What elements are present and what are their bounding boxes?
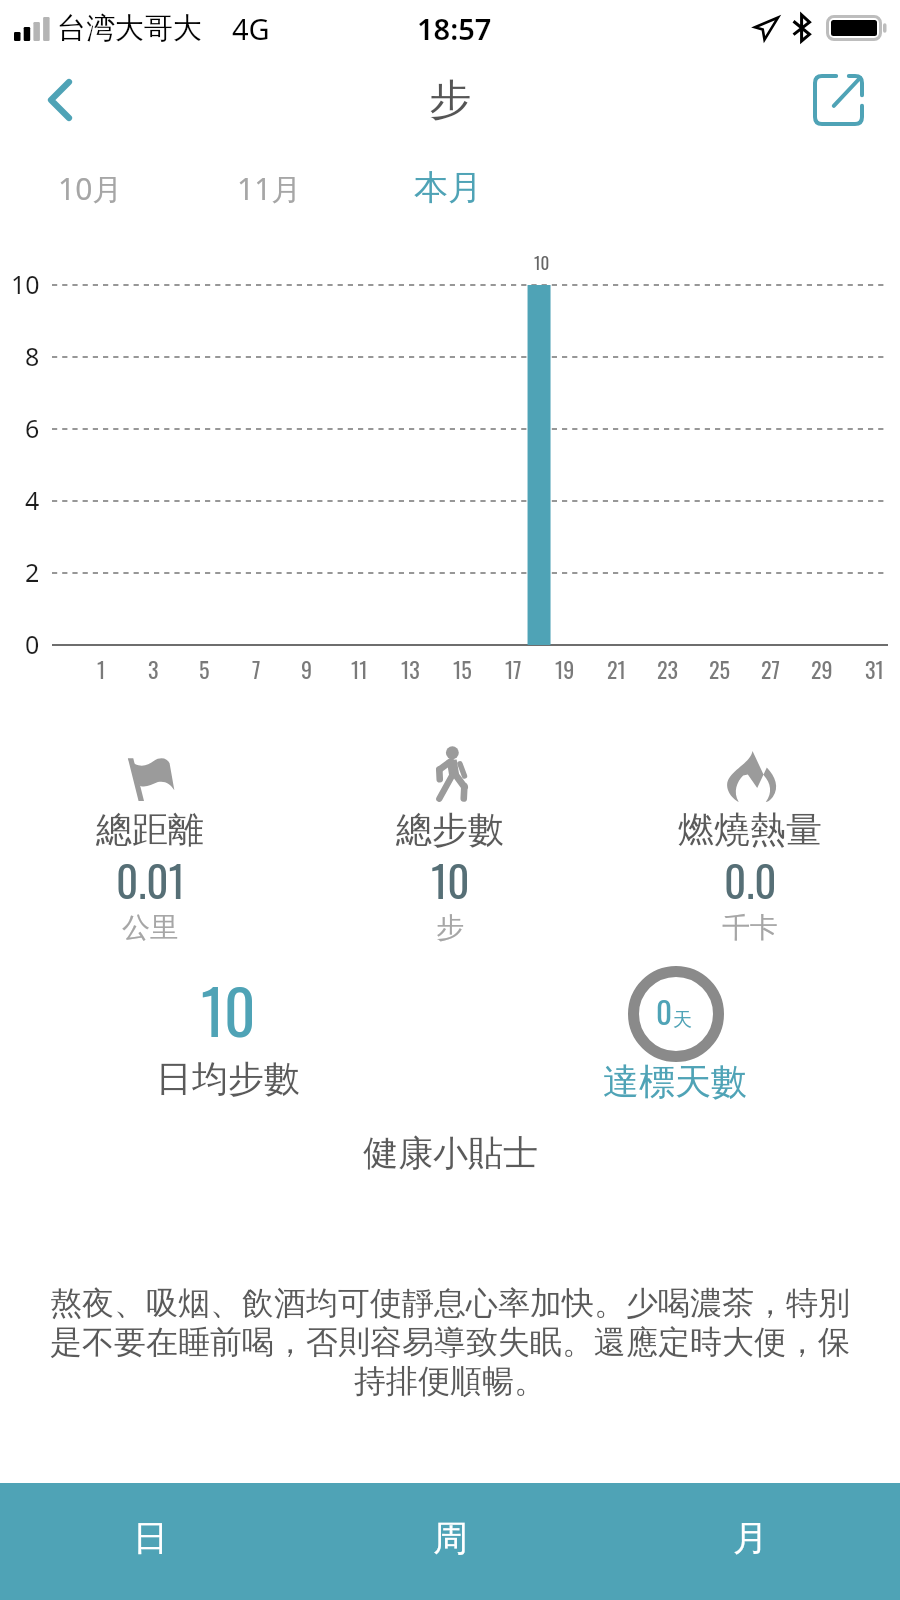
staticText: 0.01 <box>116 848 185 908</box>
button[interactable]: Back <box>22 62 98 138</box>
staticText: 步 <box>436 910 464 945</box>
staticText: 台湾大哥大 <box>57 10 202 47</box>
button[interactable]: 月 <box>600 1483 900 1600</box>
staticText: 1 <box>97 653 106 683</box>
button[interactable]: 燃燒熱量 <box>600 740 900 960</box>
staticText: 6 <box>25 411 40 445</box>
staticText: 步 <box>429 74 471 127</box>
staticText: 月 <box>733 1516 768 1560</box>
button[interactable]: 0 <box>575 960 775 1112</box>
staticText: 17 <box>505 653 522 683</box>
staticText: 公里 <box>122 910 178 945</box>
staticText: 10 <box>534 250 550 275</box>
staticText: 總步數 <box>396 807 504 852</box>
button[interactable]: 日 <box>0 1483 300 1600</box>
staticText: 31 <box>865 653 884 683</box>
button[interactable]: 10月 <box>10 160 170 216</box>
button[interactable]: 本月 <box>368 158 528 216</box>
staticText: 11月 <box>237 168 302 209</box>
staticText: 天 <box>673 1008 692 1032</box>
staticText: 日均步數 <box>156 1056 300 1101</box>
staticText: 熬夜、吸烟、飲酒均可使靜息心率加快。少喝濃茶，特別是不要在睡前喝，否則容易導致失… <box>44 1283 856 1402</box>
staticText: 3 <box>148 653 159 683</box>
staticText: 2 <box>25 555 40 589</box>
staticText: 10 <box>431 848 470 908</box>
staticText: 18:57 <box>417 9 492 48</box>
staticText: 27 <box>761 653 781 683</box>
staticText: 日 <box>133 1516 168 1560</box>
staticText: 健康小貼士 <box>363 1131 538 1175</box>
staticText: 達標天數 <box>603 1059 747 1104</box>
button[interactable]: 周 <box>300 1483 600 1600</box>
staticText: 10 <box>11 267 40 301</box>
staticText: 本月 <box>414 166 482 209</box>
button[interactable]: 總步數 <box>300 740 600 960</box>
staticText: 0.0 <box>724 848 777 908</box>
staticText: 0 <box>656 988 673 1034</box>
staticText: 0 <box>25 627 40 661</box>
staticText: 8 <box>25 339 40 373</box>
staticText: 10 <box>201 964 256 1054</box>
staticText: 燃燒熱量 <box>678 807 822 852</box>
button[interactable]: Share <box>798 60 880 140</box>
staticText: 21 <box>607 653 626 683</box>
staticText: 9 <box>301 653 313 683</box>
staticText: 23 <box>657 653 679 683</box>
staticText: 7 <box>252 653 261 683</box>
staticText: 29 <box>811 653 833 683</box>
staticText: 10月 <box>58 168 123 209</box>
staticText: 周 <box>433 1516 468 1560</box>
staticText: 總距離 <box>96 807 204 852</box>
staticText: 5 <box>199 653 210 683</box>
staticText: 4 <box>25 483 40 517</box>
staticText: 千卡 <box>722 910 778 945</box>
button[interactable]: 10 <box>128 950 328 1115</box>
button[interactable]: 11月 <box>189 160 349 216</box>
staticText: 19 <box>555 653 575 683</box>
staticText: 4G <box>232 9 270 48</box>
staticText: 25 <box>709 653 730 683</box>
staticText: 11 <box>351 653 368 683</box>
staticText: 15 <box>453 653 472 683</box>
button[interactable]: 總距離 <box>0 740 300 960</box>
staticText: 13 <box>401 653 420 683</box>
